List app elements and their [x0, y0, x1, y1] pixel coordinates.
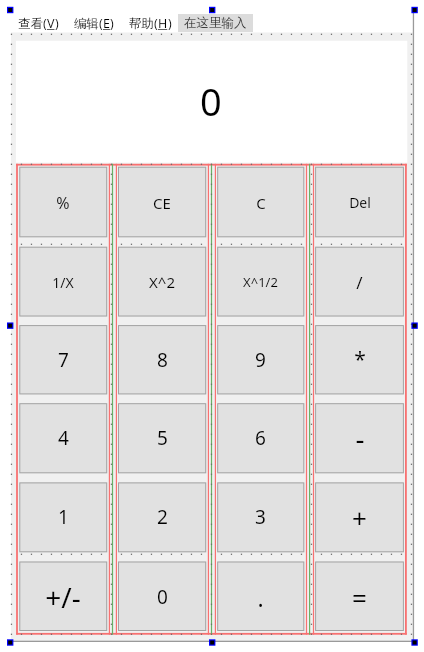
button[interactable]: 6	[217, 403, 304, 473]
staticText: 1	[58, 504, 69, 530]
staticText: +	[352, 500, 367, 535]
staticText: C	[256, 193, 266, 213]
button[interactable]: =	[315, 562, 404, 632]
button[interactable]: Del	[315, 167, 404, 238]
staticText: .	[257, 582, 264, 613]
staticText: E	[103, 15, 110, 32]
button[interactable]: 1	[19, 482, 107, 552]
staticText: Del	[349, 193, 371, 212]
staticText: )	[168, 15, 172, 32]
staticText: %	[56, 192, 70, 214]
staticText: X^1/2	[243, 273, 278, 291]
staticText: 帮助(	[129, 15, 158, 32]
button[interactable]: +/-	[19, 562, 107, 632]
staticText: *	[354, 345, 366, 374]
button[interactable]: 查看(	[18, 14, 59, 32]
staticText: =	[352, 580, 367, 615]
button[interactable]: -	[315, 403, 404, 473]
staticText: V	[47, 15, 55, 32]
button[interactable]: %	[19, 167, 107, 238]
button[interactable]: 7	[19, 325, 107, 394]
staticText: H	[158, 15, 168, 32]
button[interactable]: X^2	[118, 247, 206, 317]
button[interactable]: CE	[118, 167, 206, 238]
staticText: 9	[255, 347, 266, 373]
staticText: 查看(	[18, 15, 47, 32]
staticText: +/-	[45, 578, 81, 616]
staticText: 7	[58, 347, 69, 373]
staticText: 编辑(	[74, 15, 103, 32]
button[interactable]: 3	[217, 482, 304, 552]
button[interactable]: 在这里输入	[178, 14, 253, 32]
staticText: 0	[200, 75, 222, 127]
button[interactable]: C	[217, 167, 304, 238]
button[interactable]: +	[315, 482, 404, 552]
staticText: -	[355, 419, 365, 457]
button[interactable]: 编辑(	[74, 14, 114, 32]
staticText: 5	[157, 425, 168, 451]
staticText: 0	[157, 584, 168, 610]
button[interactable]: *	[315, 325, 404, 394]
button[interactable]: 1/X	[19, 247, 107, 317]
staticText: 3	[255, 504, 266, 530]
button[interactable]: 0	[118, 562, 206, 632]
staticText: 2	[157, 504, 168, 530]
button[interactable]: /	[315, 247, 404, 317]
staticText: )	[55, 15, 59, 32]
staticText: 8	[157, 347, 168, 373]
staticText: X^2	[149, 272, 175, 292]
staticText: )	[110, 15, 114, 32]
button[interactable]: 9	[217, 325, 304, 394]
staticText: 4	[58, 425, 69, 451]
button[interactable]: 5	[118, 403, 206, 473]
button[interactable]: 2	[118, 482, 206, 552]
button[interactable]: Display	[16, 41, 407, 163]
staticText: 6	[255, 425, 266, 451]
staticText: CE	[153, 193, 171, 213]
button[interactable]: 8	[118, 325, 206, 394]
button[interactable]: .	[217, 562, 304, 632]
button[interactable]: 帮助(	[129, 14, 172, 32]
button[interactable]: 4	[19, 403, 107, 473]
staticText: 1/X	[52, 273, 74, 292]
button[interactable]: X^1/2	[217, 247, 304, 317]
staticText: 在这里输入	[184, 15, 247, 31]
staticText: /	[356, 271, 363, 294]
